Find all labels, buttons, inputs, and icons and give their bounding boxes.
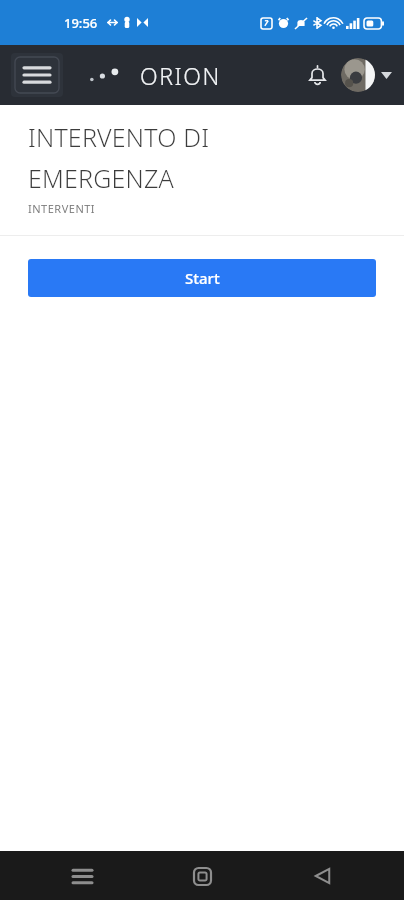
button[interactable]: Notifications (295, 53, 339, 97)
staticText: INTERVENTO DI (28, 120, 210, 154)
button[interactable]: Back (298, 852, 346, 900)
button[interactable]: Account menu (341, 58, 396, 92)
staticText: INTERVENTI (28, 201, 96, 216)
staticText: EMERGENZA (28, 161, 174, 195)
button[interactable]: Recent apps (58, 852, 106, 900)
staticText: 19:56 (64, 14, 98, 32)
button[interactable]: Open navigation menu (11, 53, 63, 97)
staticText: ORION (140, 60, 221, 91)
button[interactable]: Home (178, 852, 226, 900)
staticText: Start (185, 268, 220, 288)
button[interactable]: Start (28, 259, 376, 297)
